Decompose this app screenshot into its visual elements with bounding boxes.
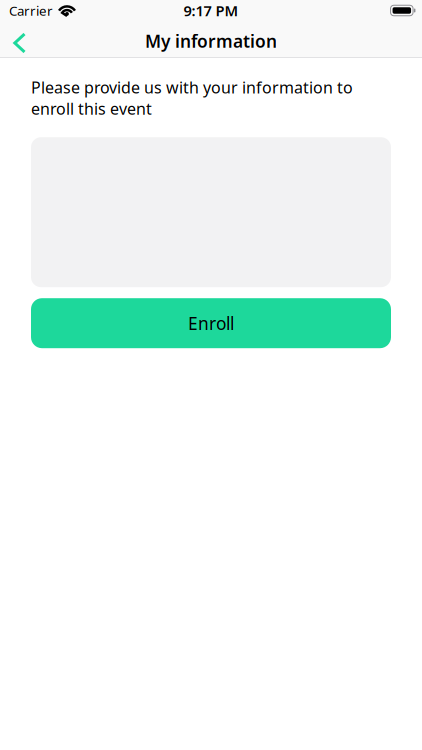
staticText: Please provide us with your information … — [31, 77, 353, 119]
button[interactable]: Enroll — [31, 298, 391, 348]
staticText: Carrier — [9, 2, 53, 19]
staticText: Enroll — [188, 312, 234, 335]
staticText: 9:17 PM — [183, 1, 238, 20]
staticText: My information — [145, 29, 277, 52]
button[interactable]: Back — [0, 25, 26, 56]
